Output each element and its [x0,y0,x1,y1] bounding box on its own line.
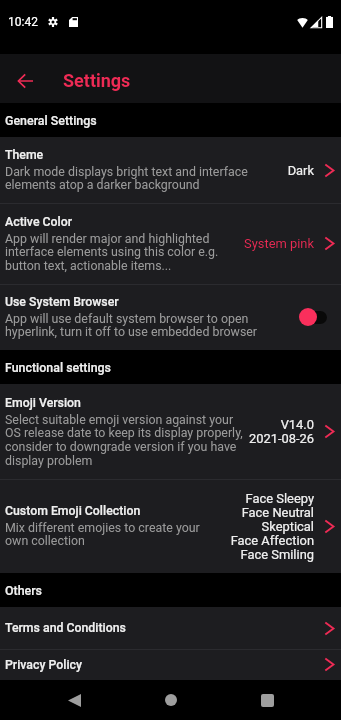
staticText: App will use default system browser to o… [5,311,258,339]
staticText: System pink [244,236,314,251]
staticText: Dark [287,163,314,178]
button[interactable]: Back [7,63,43,99]
staticText: Face Sleepy Face Neutral Skeptical Face … [230,491,314,562]
staticText: Privacy Policy [5,658,82,672]
staticText: Terms and Conditions [5,621,126,635]
staticText: 10:42 [8,15,38,29]
button[interactable]: Terms and Conditions [0,607,341,649]
staticText: Dark mode displays bright text and inter… [5,164,248,192]
staticText: Mix different emojies to create your own… [5,520,200,548]
button[interactable]: Back [51,680,97,720]
staticText: Settings [63,70,131,91]
staticText: Functional settings [5,360,111,375]
staticText: Others [5,583,42,598]
staticText: Use System Browser [5,295,119,309]
button[interactable]: Theme [0,137,341,203]
staticText: Active Color [5,215,73,229]
staticText: V14.0 2021-08-26 [248,417,314,446]
button[interactable]: Use System Browser [0,284,341,350]
button[interactable]: Active Color [0,203,341,284]
button[interactable]: Privacy Policy [0,649,341,680]
button[interactable]: Emoji Version [0,384,341,479]
staticText: App will render major and highlighted in… [5,231,219,273]
staticText: Select suitable emoji version against yo… [5,412,243,468]
button[interactable]: Use system browser toggle [299,306,327,328]
button[interactable]: Home [148,680,194,720]
staticText: Emoji Version [5,396,81,410]
staticText: Custom Emoji Collection [5,504,141,518]
staticText: Theme [5,148,44,162]
staticText: General Settings [5,113,97,128]
button[interactable]: Recent apps [244,680,290,720]
button[interactable]: Custom Emoji Collection [0,479,341,573]
